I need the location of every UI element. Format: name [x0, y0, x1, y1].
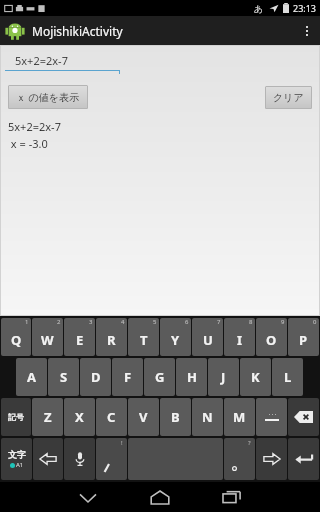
staticText: W — [41, 331, 54, 349]
button[interactable]: C — [96, 398, 127, 436]
button[interactable]: 2 — [32, 318, 63, 356]
staticText: O — [266, 331, 277, 349]
staticText: 6 — [185, 318, 189, 326]
staticText: 7 — [217, 318, 221, 326]
button[interactable]: Voice input — [64, 438, 95, 480]
staticText: Y — [171, 331, 180, 349]
button[interactable]: 文字 — [1, 438, 32, 480]
staticText: V — [139, 408, 148, 426]
button[interactable]: J — [208, 358, 239, 396]
staticText: 5 — [153, 318, 157, 326]
staticText: 記号 — [8, 412, 24, 422]
button[interactable]: Z — [32, 398, 63, 436]
staticText: MojishikiActivity — [32, 23, 123, 39]
button[interactable]: M — [224, 398, 255, 436]
staticText: 文字 — [8, 449, 26, 460]
staticText: E — [76, 331, 84, 349]
staticText: 4 — [121, 318, 125, 326]
staticText: J — [221, 368, 226, 386]
button[interactable]: Recent apps — [202, 482, 262, 512]
button[interactable]: Comma — [96, 438, 127, 480]
staticText: x = -3.0 — [8, 136, 48, 151]
staticText: B — [171, 408, 180, 426]
button[interactable]: B — [160, 398, 191, 436]
button[interactable]: F — [112, 358, 143, 396]
staticText: 2 — [57, 318, 61, 326]
staticText: A1 — [16, 461, 24, 469]
staticText: U — [203, 331, 213, 349]
staticText: 3 — [89, 318, 93, 326]
button[interactable]: 9 — [256, 318, 287, 356]
button[interactable]: K — [240, 358, 271, 396]
button[interactable]: 5x+2=2x-7 — [5, 53, 120, 74]
staticText: M — [233, 408, 246, 426]
button[interactable]: Dash — [256, 398, 287, 436]
staticText: 23:13 — [293, 2, 317, 14]
staticText: 1 — [25, 318, 29, 326]
staticText: A — [27, 368, 36, 386]
button[interactable]: 6 — [160, 318, 191, 356]
button[interactable]: Enter — [288, 438, 319, 480]
button[interactable]: G — [144, 358, 175, 396]
button[interactable]: 0 — [288, 318, 319, 356]
button[interactable]: Home — [130, 482, 190, 512]
staticText: F — [124, 368, 132, 386]
staticText: ! — [121, 439, 123, 447]
staticText: G — [155, 368, 165, 386]
button[interactable]: H — [176, 358, 207, 396]
button[interactable]: S — [48, 358, 79, 396]
button[interactable]: 3 — [64, 318, 95, 356]
button[interactable]: L — [272, 358, 303, 396]
button[interactable]: Backspace — [288, 398, 319, 436]
button[interactable]: V — [128, 398, 159, 436]
staticText: 5x+2=2x-7 — [15, 53, 68, 68]
staticText: I — [237, 331, 243, 349]
button[interactable]: Back — [58, 482, 118, 512]
staticText: S — [60, 368, 68, 386]
button[interactable]: More options — [294, 16, 320, 45]
button[interactable]: Period — [224, 438, 255, 480]
staticText: D — [91, 368, 101, 386]
staticText: Z — [44, 408, 52, 426]
button[interactable]: N — [192, 398, 223, 436]
staticText: 9 — [281, 318, 285, 326]
button[interactable]: Move cursor right — [256, 438, 287, 480]
staticText: Q — [11, 331, 22, 349]
staticText: ｘ の値を表示 — [16, 90, 80, 104]
button[interactable]: 1 — [1, 318, 31, 356]
button[interactable]: 記号 — [1, 398, 31, 436]
button[interactable]: 5 — [128, 318, 159, 356]
button[interactable]: D — [80, 358, 111, 396]
button[interactable]: 7 — [192, 318, 223, 356]
staticText: 8 — [249, 318, 253, 326]
button[interactable]: 4 — [96, 318, 127, 356]
button[interactable]: 8 — [224, 318, 255, 356]
staticText: H — [187, 368, 197, 386]
staticText: X — [75, 408, 84, 426]
button[interactable]: ｘ の値を表示 — [8, 85, 88, 109]
staticText: あ — [254, 3, 264, 14]
staticText: C — [107, 408, 116, 426]
staticText: ? — [248, 439, 251, 447]
staticText: P — [299, 331, 308, 349]
button[interactable]: A — [16, 358, 47, 396]
staticText: K — [251, 368, 260, 386]
button[interactable]: Move cursor left — [33, 438, 63, 480]
button[interactable]: クリア — [265, 86, 312, 109]
staticText: 0 — [313, 318, 317, 326]
staticText: 5x+2=2x-7 — [8, 119, 61, 134]
staticText: T — [140, 331, 148, 349]
button[interactable]: X — [64, 398, 95, 436]
staticText: N — [202, 408, 213, 426]
staticText: クリア — [273, 91, 304, 104]
staticText: L — [284, 368, 292, 386]
staticText: R — [107, 331, 116, 349]
